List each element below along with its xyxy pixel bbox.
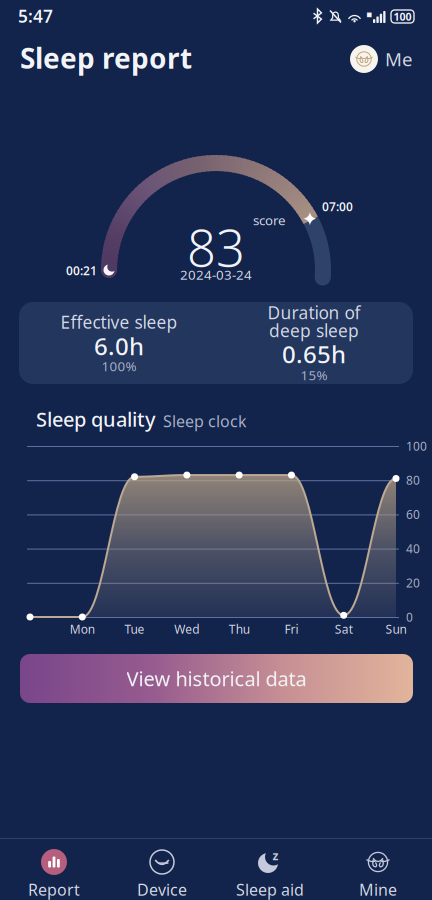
staticText: deep sleep <box>269 319 359 342</box>
button[interactable]: z <box>216 839 324 900</box>
staticText: 07:00 <box>322 198 353 214</box>
staticText: Sleep quality <box>36 406 156 432</box>
button[interactable]: Sleep quality <box>36 408 196 430</box>
button[interactable]: Sleep clock <box>163 412 263 430</box>
staticText: 0 <box>406 609 413 625</box>
staticText: 0.65h <box>282 338 346 370</box>
staticText: Device <box>137 879 187 900</box>
staticText: Wed <box>174 621 199 637</box>
staticText: Sun <box>385 621 406 637</box>
staticText: 100 <box>393 9 411 24</box>
button[interactable]: Device <box>108 839 216 900</box>
staticText: Mon <box>70 621 95 637</box>
button[interactable]: Mine <box>324 839 432 900</box>
staticText: 20 <box>406 575 420 591</box>
staticText: Thu <box>229 621 250 637</box>
staticText: z <box>272 847 278 863</box>
staticText: 15% <box>300 366 327 384</box>
staticText: ▪ <box>366 9 372 19</box>
staticText: Report <box>28 879 80 900</box>
staticText: score <box>253 211 286 229</box>
button[interactable]: Me <box>350 44 416 74</box>
staticText: 100 <box>406 438 427 454</box>
staticText: 60 <box>406 506 420 522</box>
staticText: 80 <box>406 472 420 488</box>
staticText: 5:47 <box>18 4 53 27</box>
staticText: Effective sleep <box>60 310 177 333</box>
staticText: Duration of <box>267 301 360 324</box>
staticText: 83 <box>187 213 245 281</box>
staticText: Fri <box>284 621 298 637</box>
button[interactable]: Report <box>0 839 108 900</box>
staticText: 00:21 <box>66 262 97 278</box>
staticText: Sleep clock <box>163 410 247 432</box>
staticText: Sat <box>335 621 353 637</box>
staticText: Tue <box>125 621 145 637</box>
staticText: Mine <box>359 879 397 900</box>
staticText: 40 <box>406 541 420 556</box>
staticText: 100% <box>101 357 136 375</box>
staticText: View historical data <box>126 665 306 692</box>
staticText: 6.0h <box>94 330 144 362</box>
staticText: Sleep report <box>20 39 192 77</box>
staticText: Me <box>385 47 413 71</box>
staticText: Sleep aid <box>236 879 304 900</box>
button[interactable]: View historical data <box>20 654 413 703</box>
staticText: 2024-03-24 <box>180 266 252 283</box>
